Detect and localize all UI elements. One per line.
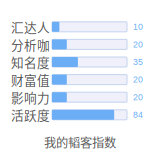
staticText: 汇达人 bbox=[11, 18, 50, 36]
staticText: 影响力 bbox=[11, 88, 50, 106]
button[interactable]: 知名度 bbox=[11, 53, 160, 71]
button[interactable]: 影响力 bbox=[11, 88, 160, 106]
button[interactable]: 财富值 bbox=[11, 71, 160, 88]
staticText: 分析咖 bbox=[11, 35, 50, 53]
staticText: 20 bbox=[133, 92, 143, 102]
staticText: 财富值 bbox=[11, 70, 50, 89]
staticText: 35 bbox=[133, 57, 143, 67]
staticText: 20 bbox=[133, 75, 143, 84]
staticText: 活跃度 bbox=[11, 106, 50, 124]
staticText: 我的韬客指数 bbox=[44, 133, 116, 151]
staticText: 20 bbox=[133, 40, 143, 49]
button[interactable]: 汇达人 bbox=[11, 18, 160, 36]
button[interactable]: 分析咖 bbox=[11, 36, 160, 53]
staticText: 10 bbox=[133, 22, 143, 32]
button[interactable]: 活跃度 bbox=[11, 106, 160, 124]
staticText: 84 bbox=[133, 110, 143, 120]
staticText: 知名度 bbox=[11, 53, 50, 71]
